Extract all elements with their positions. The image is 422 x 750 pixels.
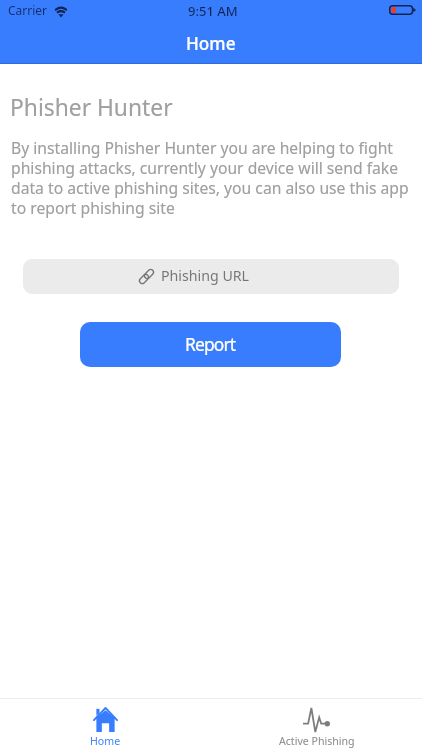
staticText: 9:51 AM (188, 4, 238, 19)
staticText: Phishing URL (161, 268, 250, 285)
staticText: Home (90, 736, 121, 748)
button[interactable]: Home (0, 699, 211, 748)
staticText: By installing Phisher Hunter you are hel… (11, 138, 422, 218)
staticText: Phisher Hunter (10, 94, 173, 122)
staticText: Carrier (8, 4, 48, 18)
staticText: Report (185, 335, 236, 355)
button[interactable]: Report (80, 322, 341, 367)
staticText: Home (186, 34, 236, 54)
staticText: Active Phishing (279, 736, 355, 748)
other: Battery (389, 5, 416, 15)
button[interactable]: Phishing URL (23, 259, 399, 294)
other: Wi-Fi (54, 6, 68, 17)
button[interactable]: Active Phishing (211, 699, 422, 748)
